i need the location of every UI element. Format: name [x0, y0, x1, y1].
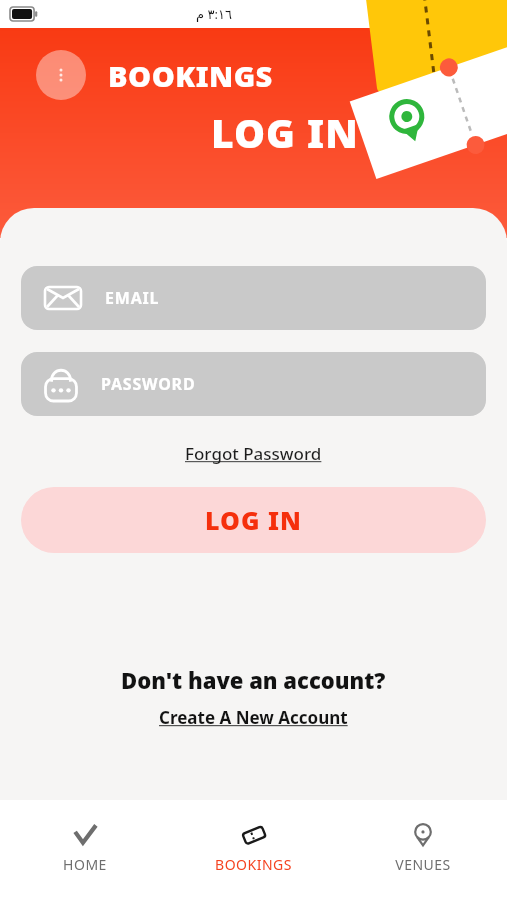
button[interactable]: BOOKINGS: [169, 800, 338, 874]
button[interactable]: Forgot Password: [177, 438, 330, 469]
staticText: PASSWORD: [101, 373, 196, 395]
button[interactable]: Create A New Account: [151, 703, 356, 732]
staticText: Forgot Password: [185, 442, 322, 465]
button[interactable]: VENUES: [338, 800, 507, 874]
staticText: ٣:١٦ م: [196, 5, 232, 23]
staticText: VENUES: [395, 855, 451, 874]
button[interactable]: LOG IN: [21, 487, 486, 553]
button[interactable]: EMAIL: [21, 266, 486, 330]
button[interactable]: More options: [36, 50, 86, 100]
staticText: LOG IN: [205, 503, 302, 537]
staticText: HOME: [63, 855, 107, 874]
button[interactable]: PASSWORD: [21, 352, 486, 416]
staticText: BOOKINGS: [215, 855, 292, 874]
staticText: BOOKINGS: [108, 56, 273, 95]
staticText: Don't have an account?: [121, 665, 386, 695]
button[interactable]: HOME: [0, 800, 169, 874]
staticText: شركة الاتصالات: [412, 5, 497, 23]
staticText: LOG IN: [211, 106, 359, 159]
staticText: Create A New Account: [159, 706, 348, 729]
staticText: EMAIL: [105, 287, 160, 309]
